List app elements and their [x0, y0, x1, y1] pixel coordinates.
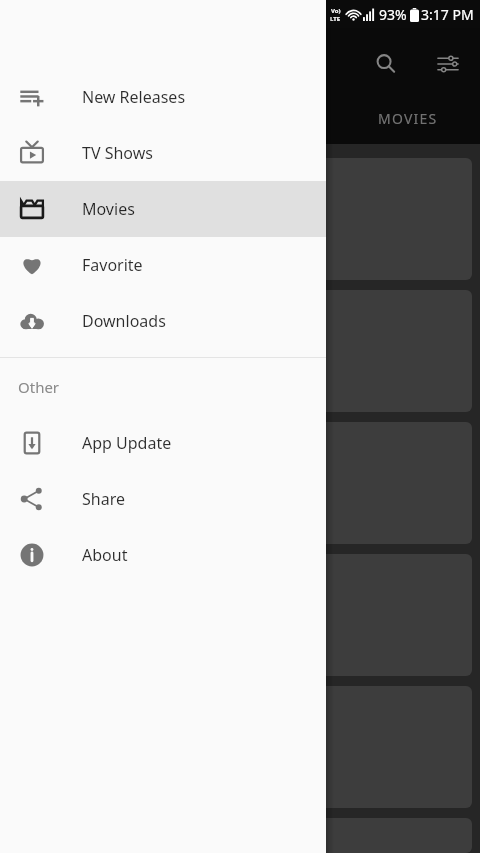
- button[interactable]: Downloads: [0, 293, 326, 349]
- staticText: New Releases: [82, 86, 186, 108]
- staticText: Downloads: [82, 310, 166, 332]
- staticText: Favorite: [82, 254, 143, 276]
- button[interactable]: [8, 158, 472, 280]
- staticText: About: [82, 544, 128, 566]
- button[interactable]: MOVIES: [340, 98, 476, 138]
- staticText: TV Shows: [82, 142, 153, 164]
- staticText: Movies: [82, 198, 135, 220]
- button[interactable]: Movies: [0, 181, 326, 237]
- staticText: 3:17 PM: [421, 5, 474, 24]
- button[interactable]: About: [0, 527, 326, 583]
- staticText: Vo): [331, 7, 341, 15]
- staticText: App Update: [82, 432, 172, 454]
- staticText: Share: [82, 488, 125, 510]
- button[interactable]: Favorite: [0, 237, 326, 293]
- button[interactable]: [8, 818, 472, 853]
- button[interactable]: [8, 554, 472, 676]
- button[interactable]: Filter: [424, 40, 472, 88]
- button[interactable]: [8, 686, 472, 808]
- button[interactable]: [8, 290, 472, 412]
- staticText: 93%: [379, 5, 407, 24]
- staticText: LTE: [330, 15, 341, 23]
- button[interactable]: New Releases: [0, 69, 326, 125]
- button[interactable]: TV Shows: [0, 125, 326, 181]
- button[interactable]: Search: [362, 40, 410, 88]
- button[interactable]: Share: [0, 471, 326, 527]
- staticText: MOVIES: [378, 109, 438, 128]
- button[interactable]: [8, 422, 472, 544]
- button[interactable]: App Update: [0, 415, 326, 471]
- staticText: Other: [18, 377, 60, 397]
